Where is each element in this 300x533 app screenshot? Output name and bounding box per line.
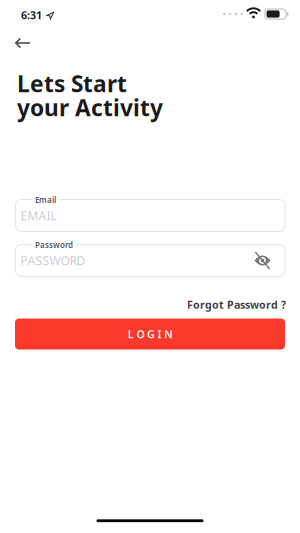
staticText: G: [147, 327, 155, 341]
button[interactable]: Email: [15, 199, 285, 231]
button[interactable]: Show password: [254, 252, 270, 268]
staticText: PASSWORD: [20, 252, 85, 268]
button[interactable]: Forgot Password ?: [187, 297, 286, 312]
button[interactable]: Password: [15, 244, 285, 276]
staticText: Lets Start: [17, 68, 127, 98]
staticText: Email: [35, 194, 56, 205]
button[interactable]: Back: [0, 0, 30, 49]
staticText: your Activity: [17, 92, 163, 122]
staticText: 6:31: [21, 8, 42, 22]
staticText: Password: [35, 239, 73, 250]
staticText: EMAIL: [20, 207, 56, 223]
staticText: I: [158, 327, 162, 341]
staticText: O: [136, 327, 144, 341]
staticText: N: [164, 327, 172, 341]
staticText: Forgot Password ?: [187, 297, 286, 312]
button[interactable]: L: [15, 318, 285, 349]
staticText: L: [128, 327, 134, 341]
